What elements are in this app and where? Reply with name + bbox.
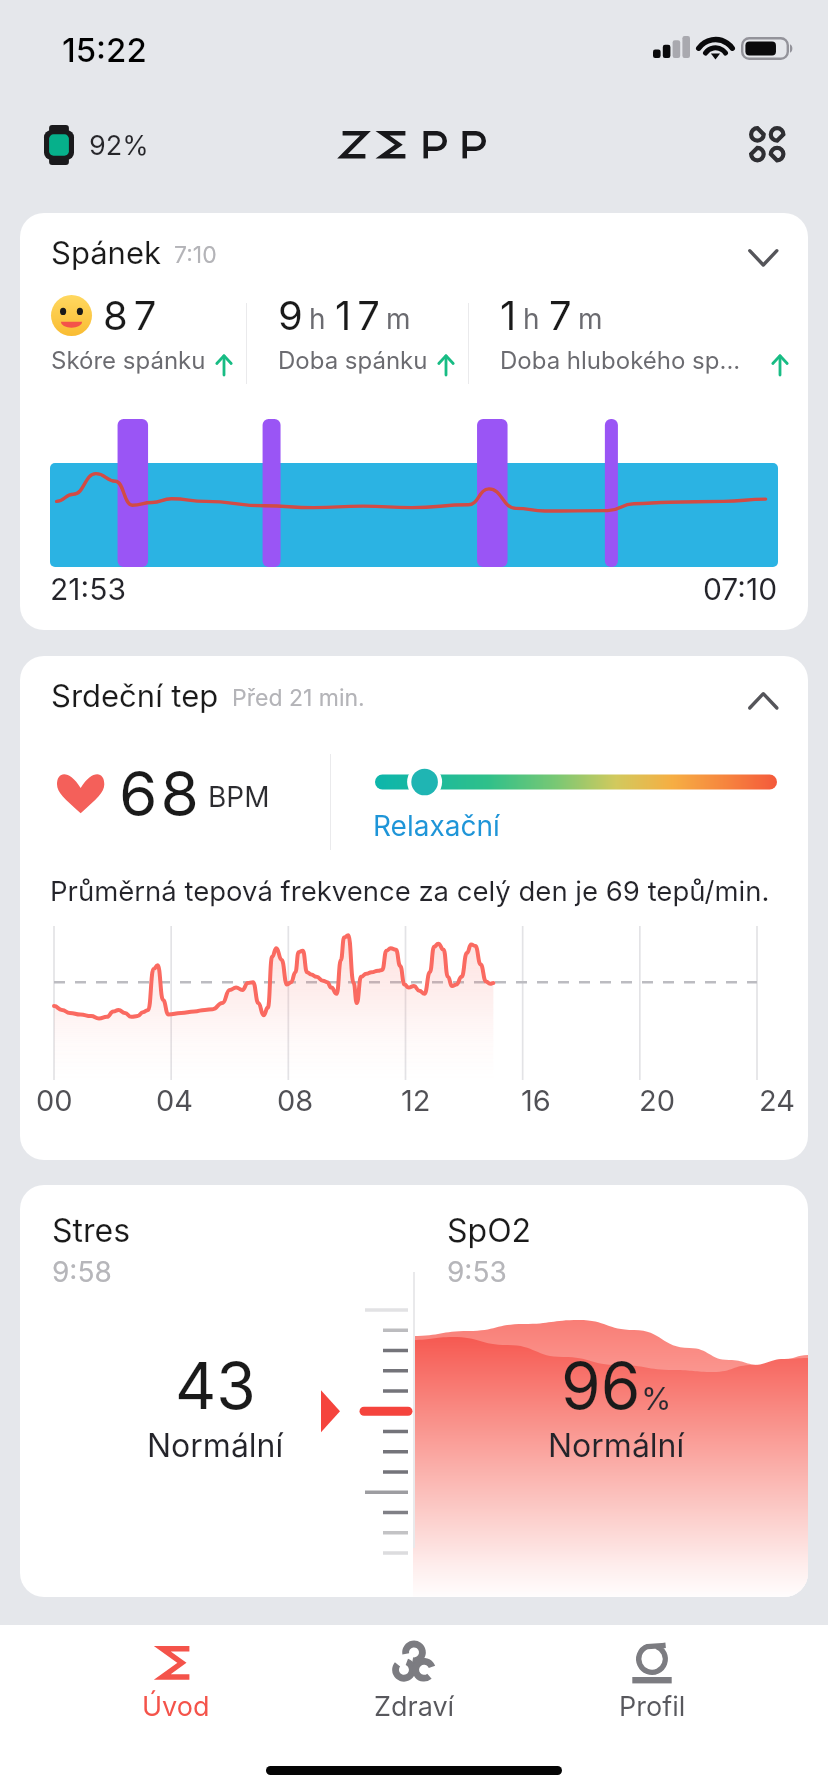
staticText: 96 <box>561 1347 641 1424</box>
staticText: Profil <box>619 1690 686 1723</box>
staticText: % <box>641 1380 672 1418</box>
staticText: Stres <box>52 1211 131 1250</box>
staticText: Úvod <box>142 1690 210 1723</box>
staticText: Doba spánku <box>278 346 428 375</box>
button[interactable]: Srdeční tep <box>20 656 808 1160</box>
staticText: 7 <box>549 291 578 339</box>
staticText: Relaxační <box>373 809 500 843</box>
button[interactable]: Stres <box>20 1185 808 1597</box>
staticText: Průměrná tepová frekvence za celý den je… <box>50 874 770 907</box>
staticText: 9:53 <box>447 1255 507 1289</box>
staticText: 68 <box>119 756 202 831</box>
staticText: 21:53 <box>50 571 126 607</box>
staticText: 43 <box>175 1347 256 1424</box>
button[interactable]: Zdraví <box>295 1625 533 1735</box>
staticText: Normální <box>147 1426 284 1465</box>
staticText: 7:10 <box>174 241 217 269</box>
staticText: Spánek <box>51 234 161 272</box>
staticText: 9:58 <box>52 1255 112 1289</box>
staticText: BPM <box>208 780 270 814</box>
staticText: h <box>523 302 540 336</box>
staticText: 00 <box>36 1083 73 1118</box>
staticText: 04 <box>156 1083 194 1118</box>
staticText: 92% <box>89 129 149 162</box>
button[interactable]: 92% <box>40 121 153 169</box>
button[interactable]: Úvod <box>57 1625 295 1735</box>
button[interactable]: Apps <box>741 118 794 171</box>
staticText: m <box>386 302 411 336</box>
staticText: 1 <box>500 291 523 339</box>
staticText: 20 <box>639 1083 675 1118</box>
staticText: 24 <box>759 1083 795 1118</box>
button[interactable]: Expand <box>728 672 799 731</box>
staticText: 07:10 <box>703 571 778 607</box>
staticText: Normální <box>548 1426 685 1465</box>
staticText: Srdeční tep <box>51 677 219 715</box>
staticText: Před 21 min. <box>232 684 365 712</box>
staticText: 15:22 <box>62 30 147 70</box>
staticText: 9 <box>278 291 309 339</box>
button[interactable]: Spánek <box>20 213 808 630</box>
staticText: Zdraví <box>374 1690 455 1723</box>
staticText: 87 <box>103 291 163 339</box>
staticText: 17 <box>335 291 386 339</box>
button[interactable]: Profil <box>533 1625 771 1735</box>
staticText: SpO2 <box>447 1211 532 1250</box>
staticText: 16 <box>521 1083 551 1118</box>
staticText: m <box>578 302 603 336</box>
staticText: h <box>309 302 326 336</box>
staticText: 12 <box>401 1083 431 1118</box>
button[interactable]: Collapse <box>728 229 799 288</box>
staticText: 08 <box>277 1083 314 1118</box>
staticText: Doba hlubokého sp... <box>500 346 771 375</box>
staticText: Skóre spánku <box>51 346 206 375</box>
